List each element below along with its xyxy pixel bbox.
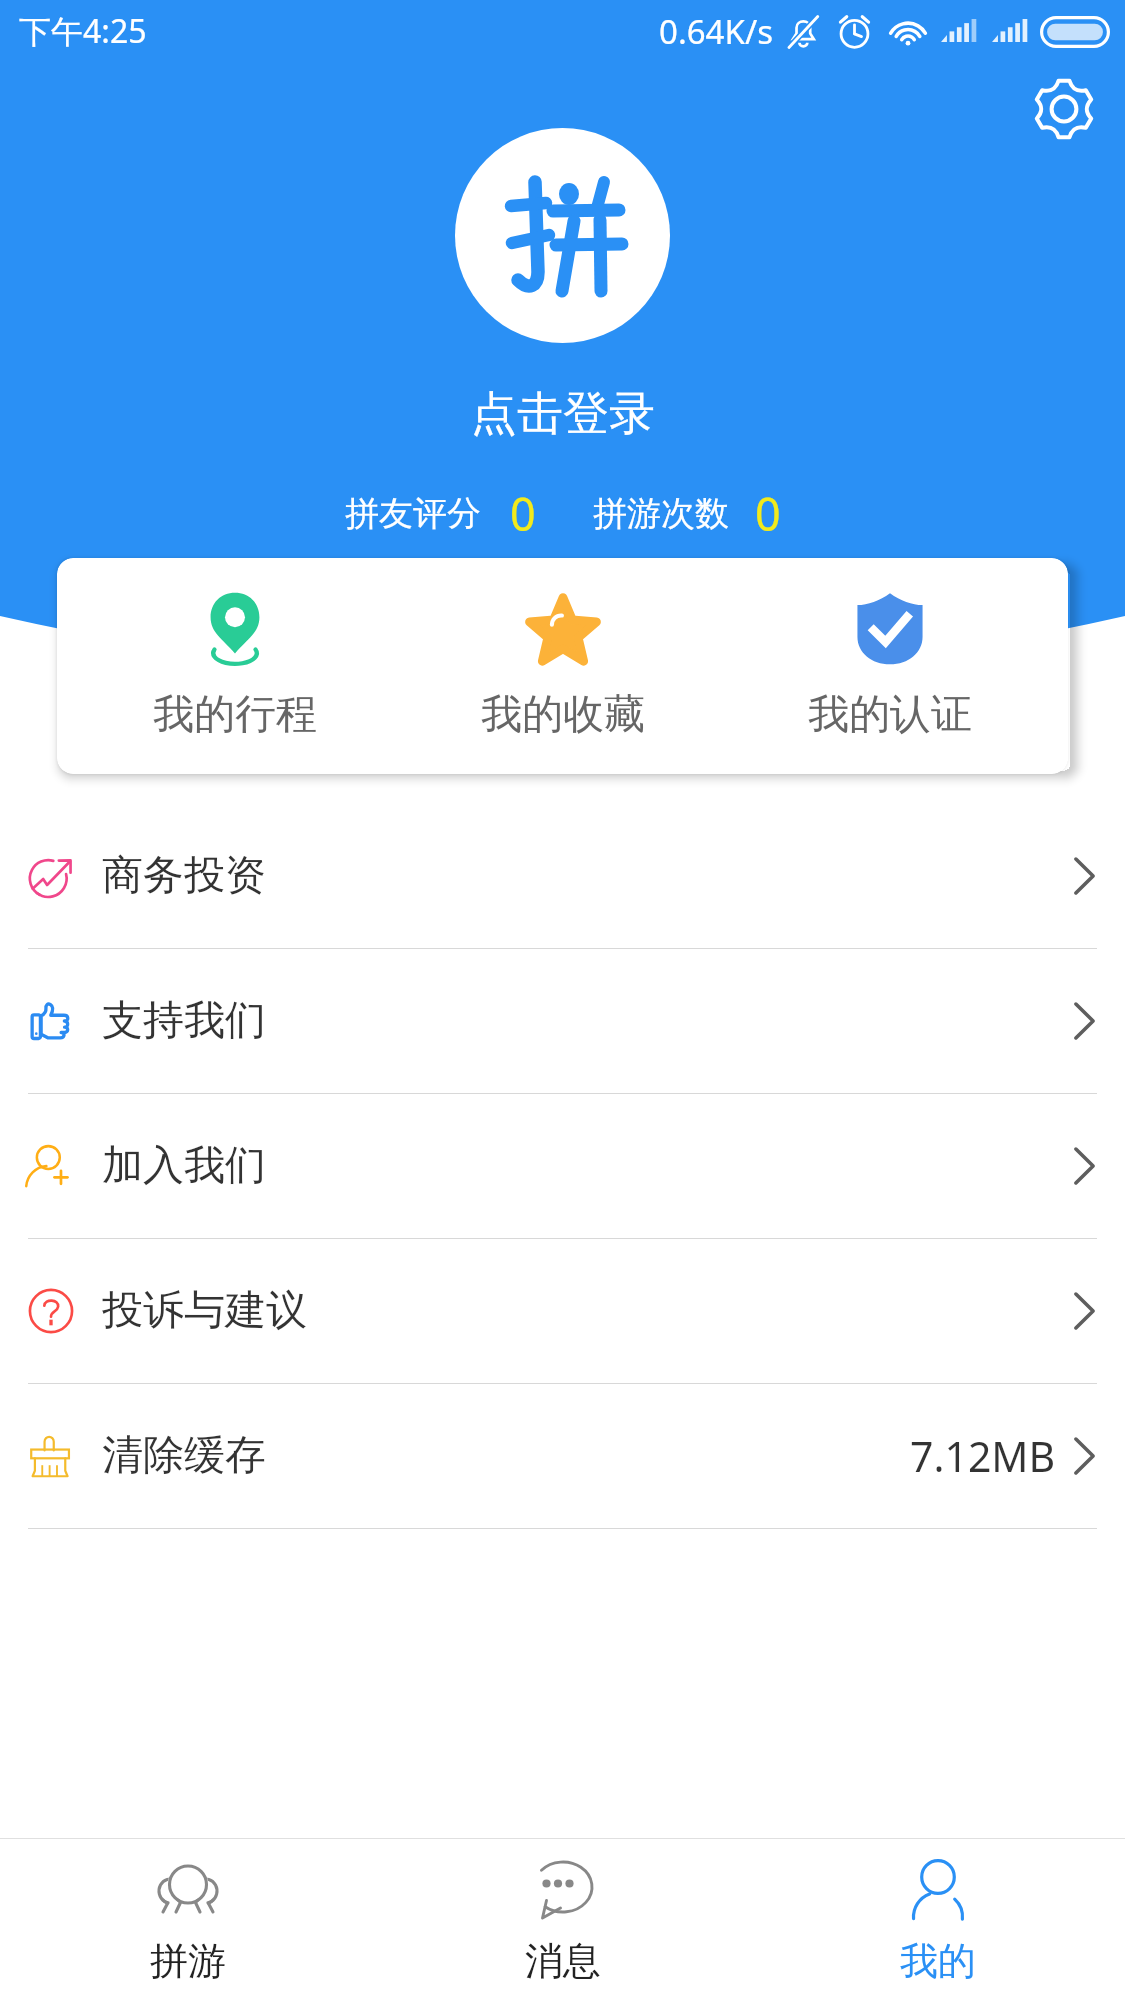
staticText: 支持我们 (102, 995, 266, 1047)
button[interactable] (455, 128, 670, 343)
button[interactable]: 拼游 (0, 1838, 375, 2001)
staticText: 投诉与建议 (102, 1285, 307, 1337)
button[interactable]: 我的 (750, 1838, 1125, 2001)
staticText: 拼游次数 (593, 492, 729, 535)
button[interactable]: 点击登录 (451, 379, 675, 449)
staticText: 7.12MB (910, 1428, 1056, 1484)
staticText: 我的 (900, 1937, 976, 1985)
staticText: 我的行程 (153, 689, 317, 741)
staticText: 清除缓存 (102, 1430, 266, 1482)
staticText: 商务投资 (102, 850, 266, 902)
button[interactable]: 我的收藏 (413, 558, 713, 774)
button[interactable]: Settings (1026, 71, 1102, 147)
staticText: 0.64K/s (659, 9, 773, 54)
staticText: 拼友评分 (345, 492, 481, 535)
staticText: 0 (510, 483, 536, 544)
button[interactable]: 我的认证 (740, 558, 1040, 774)
button[interactable]: 我的行程 (85, 558, 385, 774)
staticText: 加入我们 (102, 1140, 266, 1192)
staticText: 0 (755, 483, 781, 544)
button[interactable]: 加入我们 (0, 1094, 1125, 1238)
button[interactable]: 投诉与建议 (0, 1239, 1125, 1383)
staticText: 我的收藏 (481, 689, 645, 741)
staticText: 下午4:25 (19, 9, 147, 53)
staticText: 拼游 (150, 1937, 226, 1985)
staticText: 消息 (525, 1937, 601, 1985)
staticText: 点击登录 (471, 385, 655, 443)
staticText: 我的认证 (808, 689, 972, 741)
button[interactable]: 商务投资 (0, 804, 1125, 948)
button[interactable]: 消息 (375, 1838, 750, 2001)
button[interactable]: 支持我们 (0, 949, 1125, 1093)
button[interactable]: 清除缓存 (0, 1384, 1125, 1528)
